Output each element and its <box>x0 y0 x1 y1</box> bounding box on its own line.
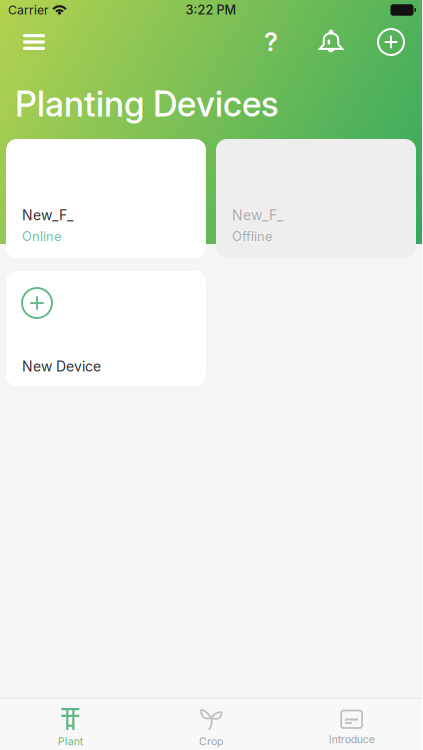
staticText: Carrier <box>8 3 49 17</box>
button[interactable]: Plant <box>0 699 141 750</box>
staticText: Online <box>22 228 61 244</box>
button[interactable]: New_F_ <box>216 139 416 258</box>
staticText: 3:22 PM <box>185 2 236 18</box>
staticText: Planting Devices <box>15 83 279 125</box>
button[interactable]: Help <box>249 20 293 64</box>
button[interactable]: New_F_ <box>6 139 206 258</box>
button[interactable]: Introduce <box>281 699 422 750</box>
staticText: Plant <box>58 735 83 748</box>
button[interactable]: Notifications <box>309 20 353 64</box>
staticText: New_F_ <box>232 207 283 223</box>
staticText: New Device <box>22 358 101 375</box>
staticText: Crop <box>199 735 223 748</box>
staticText: Offline <box>232 228 272 244</box>
staticText: ? <box>264 27 278 57</box>
button[interactable]: New Device <box>6 271 206 386</box>
button[interactable]: Add device <box>369 20 413 64</box>
staticText: New_F_ <box>22 207 73 223</box>
button[interactable]: Menu <box>12 20 56 64</box>
staticText: Introduce <box>329 733 375 746</box>
button[interactable]: Crop <box>141 699 281 750</box>
